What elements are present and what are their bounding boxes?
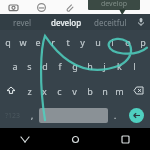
- button[interactable]: w: [15, 30, 30, 54]
- staticText: ?123: [5, 111, 21, 121]
- staticText: h: [87, 60, 93, 72]
- button[interactable]: ,: [25, 103, 39, 128]
- staticText: f: [58, 60, 62, 72]
- staticText: q: [5, 36, 11, 48]
- staticText: revel: [13, 17, 32, 28]
- staticText: w: [19, 36, 27, 48]
- button[interactable]: deceitful: [88, 14, 132, 30]
- button[interactable]: Enter: [129, 108, 144, 123]
- staticText: v: [72, 85, 77, 97]
- staticText: l: [133, 60, 136, 72]
- button[interactable]: revel: [0, 14, 44, 30]
- button[interactable]: a: [7, 54, 22, 78]
- button[interactable]: g: [67, 54, 82, 78]
- button[interactable]: Hide keyboard: [0, 128, 50, 150]
- button[interactable]: u: [90, 30, 105, 54]
- staticText: t: [66, 36, 70, 48]
- button[interactable]: Voice input: [132, 14, 150, 30]
- button[interactable]: Camera: [4, 0, 22, 14]
- button[interactable]: Shift: [0, 78, 22, 103]
- button[interactable]: develop: [44, 14, 88, 30]
- button[interactable]: Stickers: [32, 0, 50, 14]
- staticText: k: [117, 60, 122, 72]
- button[interactable]: n: [97, 78, 112, 103]
- staticText: b: [87, 85, 93, 97]
- staticText: develop: [101, 0, 127, 9]
- button[interactable]: e: [30, 30, 45, 54]
- button[interactable]: c: [52, 78, 67, 103]
- button[interactable]: i: [105, 30, 120, 54]
- staticText: p: [140, 36, 146, 48]
- button[interactable]: Backspace: [127, 78, 150, 103]
- staticText: a: [12, 60, 18, 72]
- button[interactable]: m: [112, 78, 127, 103]
- staticText: y: [80, 36, 85, 48]
- staticText: u: [95, 36, 101, 48]
- staticText: o: [125, 36, 131, 48]
- staticText: g: [72, 60, 78, 72]
- button[interactable]: Home: [50, 128, 100, 150]
- button[interactable]: q: [0, 30, 15, 54]
- staticText: z: [27, 85, 32, 97]
- button[interactable]: Recent apps: [100, 128, 150, 150]
- button[interactable]: j: [97, 54, 112, 78]
- staticText: d: [42, 60, 48, 72]
- button[interactable]: Attach file: [60, 0, 78, 14]
- button[interactable]: k: [112, 54, 127, 78]
- button[interactable]: t: [60, 30, 75, 54]
- staticText: e: [35, 36, 41, 48]
- button[interactable]: v: [67, 78, 82, 103]
- staticText: j: [103, 60, 106, 72]
- staticText: .: [114, 110, 117, 121]
- button[interactable]: z: [22, 78, 37, 103]
- button[interactable]: d: [37, 54, 52, 78]
- button[interactable]: x: [37, 78, 52, 103]
- button[interactable]: f: [52, 54, 67, 78]
- button[interactable]: l: [127, 54, 142, 78]
- staticText: i: [111, 36, 114, 48]
- staticText: deceitful: [94, 17, 127, 28]
- button[interactable]: h: [82, 54, 97, 78]
- button[interactable]: Space: [39, 108, 108, 123]
- button[interactable]: s: [22, 54, 37, 78]
- staticText: c: [57, 85, 62, 97]
- staticText: develop: [51, 17, 82, 28]
- button[interactable]: b: [82, 78, 97, 103]
- staticText: s: [27, 60, 32, 72]
- button[interactable]: r: [45, 30, 60, 54]
- button[interactable]: y: [75, 30, 90, 54]
- staticText: m: [115, 85, 124, 97]
- button[interactable]: o: [120, 30, 135, 54]
- staticText: x: [42, 85, 47, 97]
- button[interactable]: p: [135, 30, 150, 54]
- staticText: ,: [31, 110, 34, 121]
- staticText: r: [51, 36, 55, 48]
- button[interactable]: .: [108, 103, 122, 128]
- staticText: n: [102, 85, 108, 97]
